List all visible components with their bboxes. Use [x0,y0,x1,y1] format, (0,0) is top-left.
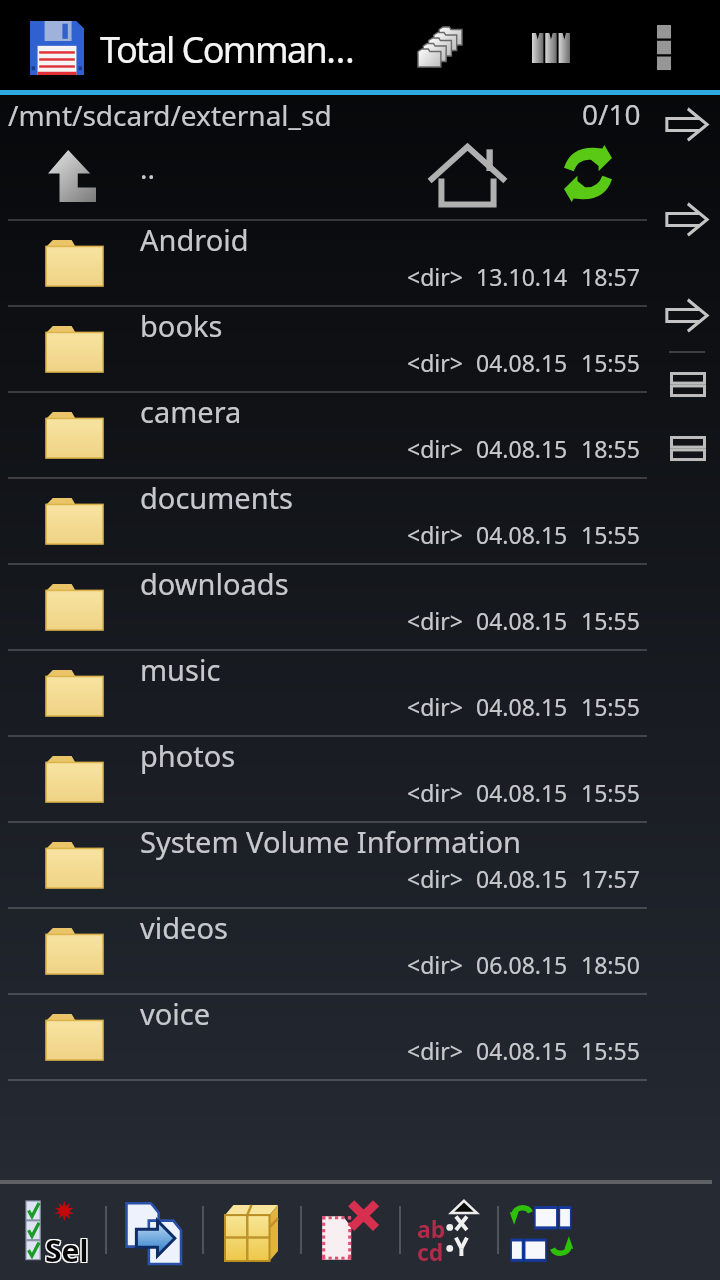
button[interactable]: Switch panel [666,202,708,237]
staticText: 0/10 [582,95,641,133]
staticText: Android [140,220,249,259]
button[interactable]: Switch panel [666,107,708,142]
staticText: Sel [45,1230,89,1271]
staticText: photos [140,736,236,775]
staticText: <dir> [407,863,463,894]
staticText: /mnt/sdcard/external_sd [8,96,332,134]
staticText: <dir> [407,691,463,722]
button[interactable]: camera [0,391,655,477]
button[interactable]: App menu [18,9,96,81]
staticText: 13.10.14 [476,261,568,292]
button[interactable]: Refresh [564,145,612,202]
staticText: 15:55 [581,519,640,550]
staticText: Sel [44,1231,88,1272]
button[interactable]: Compress [212,1189,298,1275]
staticText: 04.08.15 [476,863,568,894]
button[interactable]: documents [0,477,655,563]
staticText: Sel [46,1231,90,1272]
staticText: <dir> [407,519,463,550]
button[interactable]: Home [428,145,507,207]
staticText: documents [140,478,293,517]
staticText: <dir> [407,433,463,464]
button[interactable]: downloads [0,563,655,649]
staticText: 04.08.15 [476,1035,568,1066]
staticText: Sel [46,1229,90,1270]
button[interactable]: More options [622,7,706,83]
button[interactable]: Parent folder [0,143,655,218]
staticText: 04.08.15 [476,605,568,636]
staticText: <dir> [407,347,463,378]
button[interactable]: photos [0,735,655,821]
button[interactable]: Split view [670,436,706,460]
button[interactable]: Bookmarks [509,7,593,83]
staticText: 15:55 [581,605,640,636]
staticText: 18:55 [581,433,640,464]
staticText: <dir> [407,1035,463,1066]
staticText: <dir> [407,605,463,636]
button[interactable]: books [0,305,655,391]
button[interactable]: videos [0,907,655,993]
staticText: 04.08.15 [476,433,568,464]
staticText: books [140,306,223,345]
staticText: 15:55 [581,691,640,722]
staticText: Sel [44,1229,88,1270]
staticText: videos [140,908,228,947]
button[interactable]: Switch panel [666,298,708,333]
staticText: voice [140,994,211,1033]
staticText: 04.08.15 [476,519,568,550]
button[interactable]: Split view [670,372,706,396]
staticText: 18:57 [581,261,640,292]
staticText: camera [140,392,242,431]
button[interactable]: Swap panels [505,1189,601,1275]
staticText: 04.08.15 [476,691,568,722]
staticText: 06.08.15 [476,949,568,980]
staticText: 04.08.15 [476,777,568,808]
staticText: 15:55 [581,347,640,378]
button[interactable]: Multi-rename [398,7,482,83]
staticText: <dir> [407,777,463,808]
button[interactable]: voice [0,993,655,1079]
button[interactable]: Android [0,219,655,305]
staticText: 17:57 [581,863,640,894]
staticText: downloads [140,564,289,603]
staticText: <dir> [407,261,463,292]
staticText: music [140,650,221,689]
staticText: 04.08.15 [476,347,568,378]
staticText: 15:55 [581,777,640,808]
staticText: cd [417,1236,444,1267]
button[interactable]: Delete [310,1189,396,1275]
button[interactable]: music [0,649,655,735]
button[interactable]: Select files [16,1189,102,1275]
staticText: .. [140,149,156,187]
staticText: <dir> [407,949,463,980]
staticText: 18:50 [581,949,640,980]
staticText: ab [417,1213,446,1244]
staticText: System Volume Information [140,822,521,861]
staticText: Total Comman… [100,25,354,74]
button[interactable]: Rename [406,1189,502,1275]
staticText: 15:55 [581,1035,640,1066]
button[interactable]: Copy [112,1189,198,1275]
button[interactable]: System Volume Information [0,821,655,907]
